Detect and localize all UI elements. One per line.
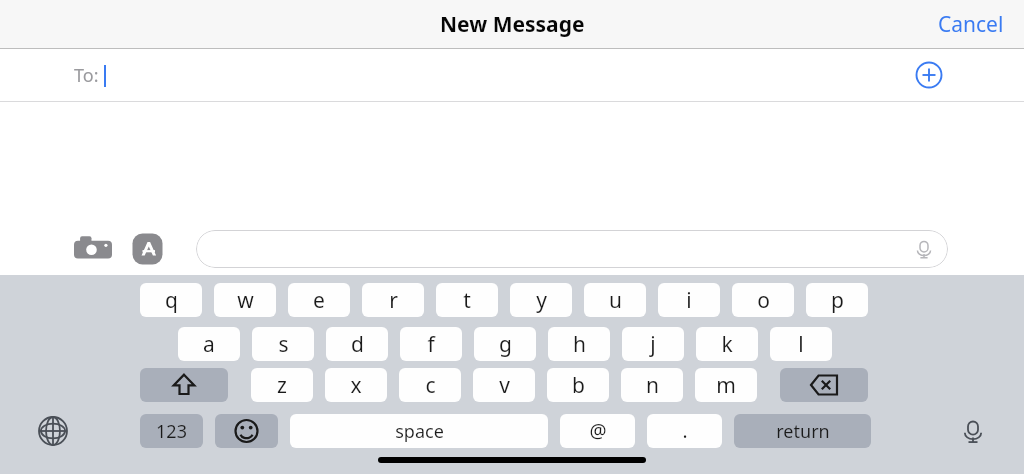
staticText: a xyxy=(203,330,215,359)
button[interactable]: c xyxy=(399,368,461,402)
button[interactable]: u xyxy=(584,283,646,317)
button[interactable]: Dictate xyxy=(196,230,948,268)
button[interactable]: z xyxy=(251,368,313,402)
staticText: g xyxy=(499,330,512,359)
staticText: s xyxy=(278,330,289,359)
button[interactable]: a xyxy=(178,327,240,361)
button[interactable]: space xyxy=(290,414,548,448)
staticText: Cancel xyxy=(938,10,1004,39)
staticText: New Message xyxy=(440,10,585,39)
button[interactable]: d xyxy=(326,327,388,361)
staticText: c xyxy=(425,371,436,400)
button[interactable]: n xyxy=(621,368,683,402)
button[interactable]: Dictate xyxy=(912,237,936,261)
button[interactable]: return xyxy=(734,414,871,448)
button[interactable]: v xyxy=(473,368,535,402)
staticText: e xyxy=(313,286,325,315)
staticText: u xyxy=(609,286,622,315)
button[interactable]: m xyxy=(695,368,757,402)
button[interactable]: @ xyxy=(560,414,635,448)
button[interactable]: e xyxy=(288,283,350,317)
staticText: d xyxy=(351,330,364,359)
staticText: k xyxy=(721,330,733,359)
staticText: h xyxy=(573,330,586,359)
button[interactable]: h xyxy=(548,327,610,361)
staticText: return xyxy=(776,419,830,444)
button[interactable]: w xyxy=(214,283,276,317)
staticText: o xyxy=(757,286,770,315)
staticText: n xyxy=(646,371,659,400)
button[interactable]: Backspace xyxy=(780,368,868,402)
staticText: f xyxy=(427,330,435,359)
staticText: y xyxy=(536,286,547,315)
staticText: m xyxy=(716,371,736,400)
staticText: r xyxy=(389,286,398,315)
button[interactable]: j xyxy=(622,327,684,361)
staticText: To: xyxy=(74,63,99,88)
button[interactable]: Camera xyxy=(74,232,112,266)
staticText: x xyxy=(350,371,362,400)
button[interactable]: y xyxy=(510,283,572,317)
button[interactable]: x xyxy=(325,368,387,402)
button[interactable]: f xyxy=(400,327,462,361)
button[interactable]: Emoji xyxy=(215,414,278,448)
button[interactable]: Shift xyxy=(140,368,228,402)
staticText: l xyxy=(798,330,804,359)
button[interactable]: i xyxy=(658,283,720,317)
staticText: . xyxy=(682,418,688,444)
button[interactable]: q xyxy=(140,283,202,317)
button[interactable]: Add contact xyxy=(912,58,946,92)
button[interactable]: s xyxy=(252,327,314,361)
staticText: j xyxy=(650,330,656,359)
staticText: w xyxy=(237,286,254,315)
staticText: @ xyxy=(589,418,607,444)
button[interactable]: Cancel xyxy=(932,4,1010,45)
button[interactable]: b xyxy=(547,368,609,402)
staticText: q xyxy=(165,286,178,315)
staticText: t xyxy=(463,286,471,315)
button[interactable]: 123 xyxy=(140,414,203,448)
staticText: i xyxy=(686,286,692,315)
button[interactable]: Dictation xyxy=(952,410,994,452)
staticText: b xyxy=(572,371,585,400)
staticText: 123 xyxy=(156,419,187,444)
button[interactable]: t xyxy=(436,283,498,317)
button[interactable]: o xyxy=(732,283,794,317)
button[interactable]: k xyxy=(696,327,758,361)
button[interactable]: . xyxy=(647,414,722,448)
button[interactable]: Apps xyxy=(131,231,167,267)
button[interactable]: l xyxy=(770,327,832,361)
button[interactable]: Switch keyboard xyxy=(32,410,74,452)
staticText: v xyxy=(499,371,510,400)
button[interactable]: g xyxy=(474,327,536,361)
staticText: p xyxy=(831,286,844,315)
staticText: z xyxy=(277,371,287,400)
button[interactable]: r xyxy=(362,283,424,317)
staticText: space xyxy=(395,419,444,444)
button[interactable]: p xyxy=(806,283,868,317)
